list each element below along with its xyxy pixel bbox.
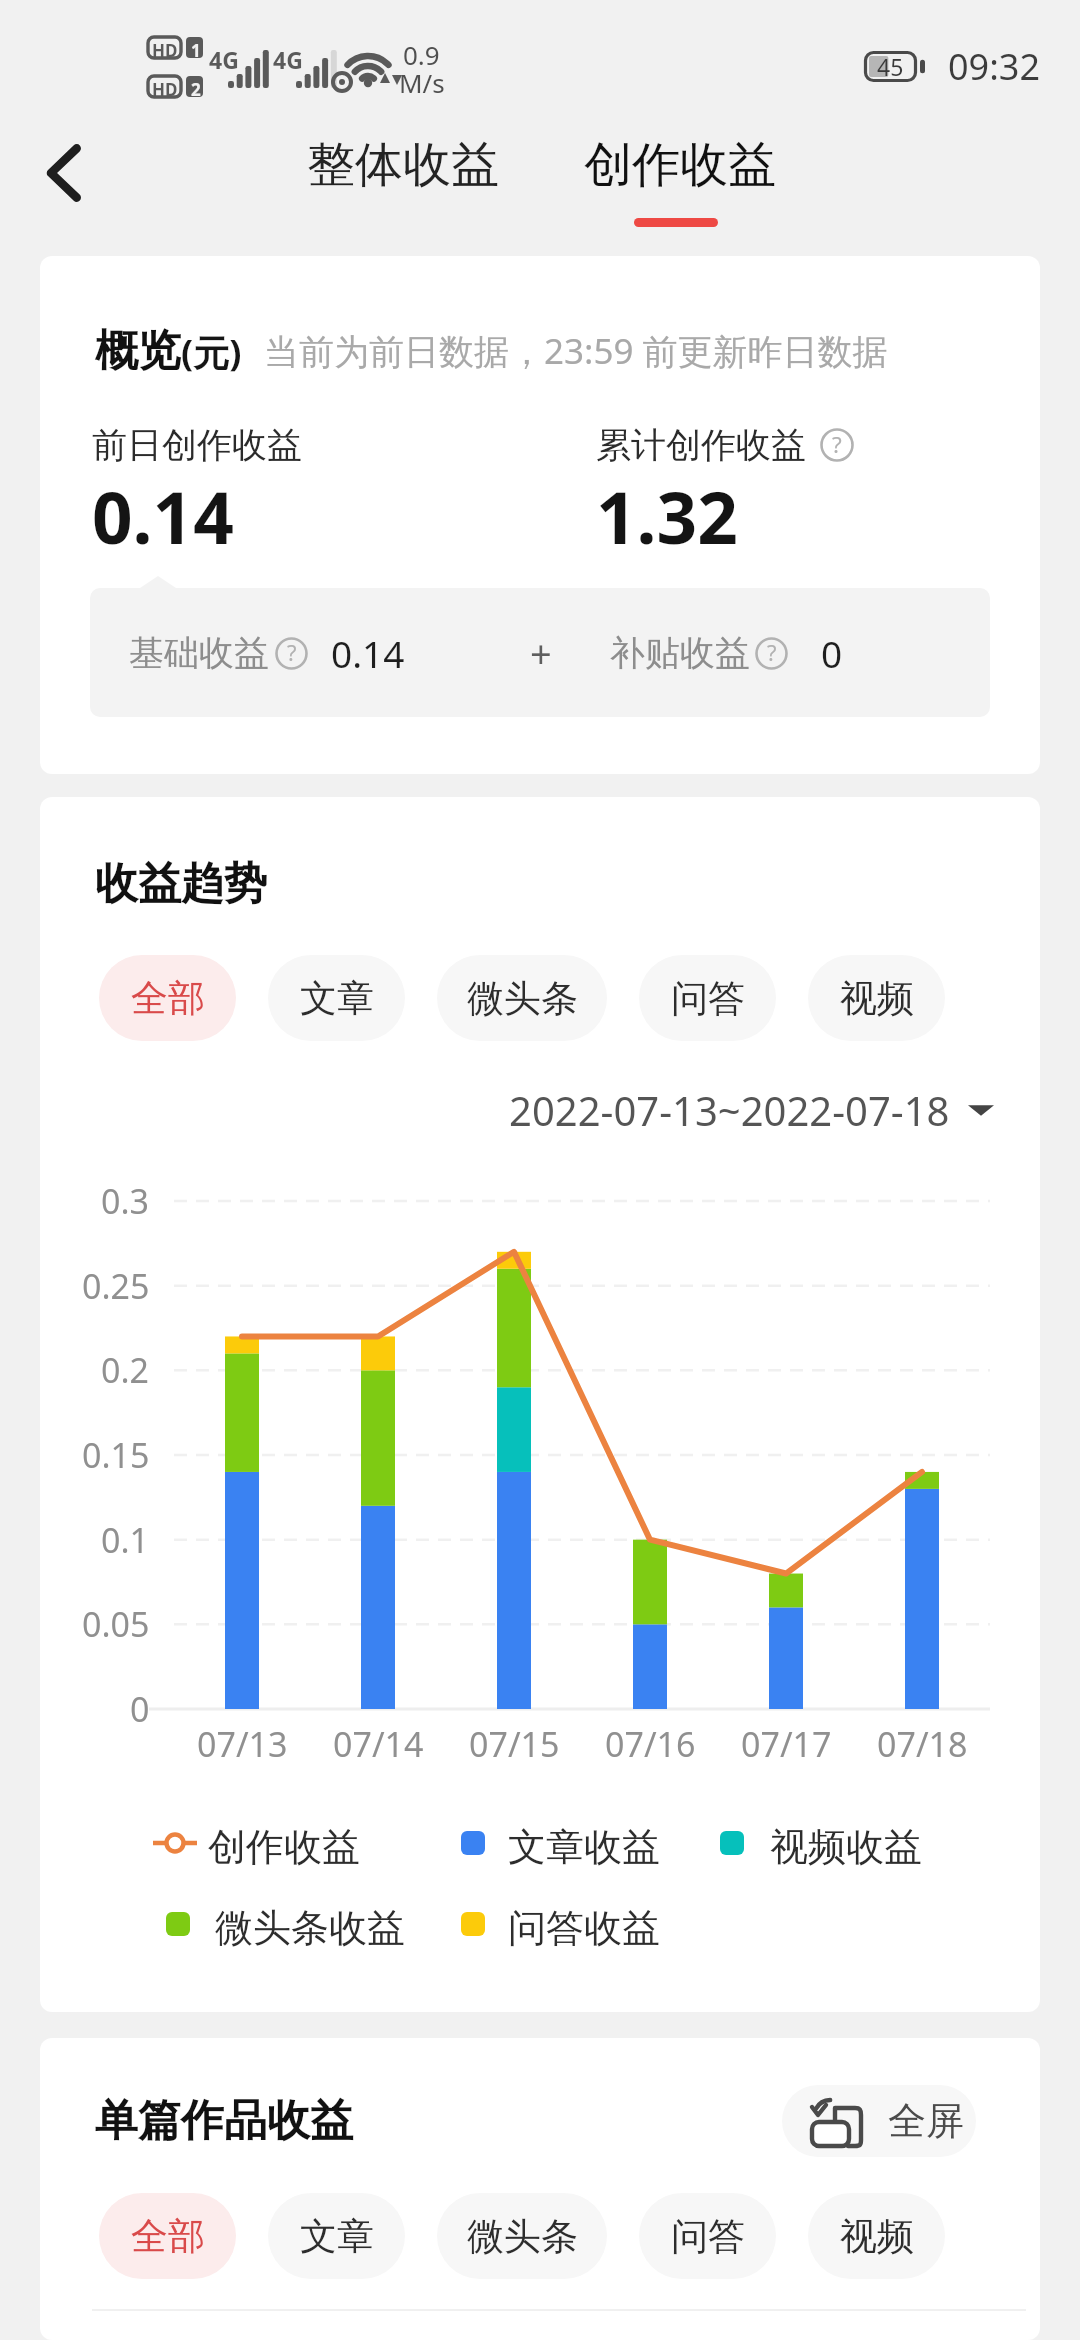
staticText: 07/14 — [333, 1721, 424, 1767]
staticText: 07/18 — [877, 1721, 968, 1767]
staticText: 0.15 — [82, 1432, 150, 1478]
button[interactable]: Help — [755, 637, 788, 670]
staticText: 基础收益 — [129, 631, 269, 675]
staticText: 0.05 — [82, 1601, 150, 1647]
staticText: 问答 — [671, 975, 745, 1022]
staticText: 整体收益 — [307, 135, 499, 195]
staticText: ? — [832, 429, 842, 460]
staticText: 视频 — [840, 975, 914, 1022]
staticText: 09:32 — [948, 42, 1041, 91]
staticText: 当前为前日数据，23:59 前更新昨日数据 — [264, 327, 888, 375]
staticText: 全屏 — [888, 2097, 964, 2145]
staticText: 视频 — [840, 2213, 914, 2260]
staticText: + — [530, 627, 552, 679]
button[interactable]: 2022-07-13~2022-07-18 — [40, 1083, 994, 1137]
staticText: 0.3 — [101, 1178, 150, 1224]
staticText: 累计创作收益 — [596, 423, 806, 467]
staticText: 07/17 — [741, 1721, 832, 1767]
button[interactable]: 全部 — [99, 955, 236, 1041]
staticText: 问答收益 — [508, 1904, 660, 1952]
staticText: 1 — [191, 39, 201, 62]
button[interactable]: 微头条 — [437, 2193, 607, 2279]
staticText: ? — [767, 638, 777, 668]
staticText: 07/16 — [605, 1721, 696, 1767]
staticText: 4G — [209, 44, 239, 75]
staticText: 0.1 — [101, 1517, 150, 1563]
staticText: 0.14 — [331, 628, 405, 678]
button[interactable]: 全屏 — [782, 2085, 976, 2157]
button[interactable]: 问答 — [639, 955, 776, 1041]
staticText: 前日创作收益 — [92, 423, 302, 467]
staticText: 全部 — [131, 975, 205, 1022]
staticText: 微头条 — [467, 2213, 578, 2260]
staticText: 收益趋势 — [95, 857, 267, 911]
staticText: 概览 — [95, 324, 181, 378]
staticText: 1.32 — [596, 468, 738, 565]
button[interactable]: 视频 — [808, 955, 945, 1041]
staticText: 0.9 — [403, 37, 440, 72]
staticText: 0 — [821, 628, 843, 678]
staticText: 文章收益 — [508, 1823, 660, 1871]
staticText: ? — [287, 638, 297, 668]
staticText: 创作收益 — [584, 135, 776, 195]
button[interactable]: 微头条 — [437, 955, 607, 1041]
staticText: 微头条 — [467, 975, 578, 1022]
button[interactable]: Help — [275, 637, 308, 670]
staticText: 2 — [191, 78, 201, 101]
staticText: 07/15 — [469, 1721, 560, 1767]
button[interactable]: 创作收益 — [560, 111, 800, 219]
button[interactable]: 问答 — [639, 2193, 776, 2279]
staticText: HD — [152, 39, 178, 62]
staticText: M/s — [399, 65, 445, 100]
staticText: (元) — [181, 328, 242, 377]
staticText: 创作收益 — [208, 1823, 360, 1871]
button[interactable]: 文章 — [268, 955, 405, 1041]
button[interactable]: 全部 — [99, 2193, 236, 2279]
button[interactable]: 文章 — [268, 2193, 405, 2279]
staticText: 0.14 — [92, 468, 234, 565]
staticText: 0.25 — [82, 1263, 150, 1309]
button[interactable]: 视频 — [808, 2193, 945, 2279]
button[interactable]: Back — [34, 137, 106, 209]
staticText: HD — [152, 78, 178, 101]
staticText: 补贴收益 — [610, 631, 750, 675]
staticText: 07/13 — [197, 1721, 288, 1767]
staticText: 4G — [273, 44, 303, 75]
staticText: 文章 — [300, 2213, 374, 2260]
staticText: 文章 — [300, 975, 374, 1022]
staticText: 视频收益 — [770, 1823, 922, 1871]
staticText: 0 — [130, 1686, 150, 1732]
staticText: 问答 — [671, 2213, 745, 2260]
button[interactable]: Help — [820, 428, 854, 462]
staticText: 0.2 — [101, 1347, 150, 1393]
staticText: 单篇作品收益 — [95, 2094, 353, 2148]
button[interactable]: 整体收益 — [281, 111, 525, 219]
staticText: 2022-07-13~2022-07-18 — [509, 1083, 950, 1137]
staticText: 45 — [877, 51, 904, 82]
staticText: 微头条收益 — [215, 1904, 405, 1952]
staticText: 全部 — [131, 2213, 205, 2260]
